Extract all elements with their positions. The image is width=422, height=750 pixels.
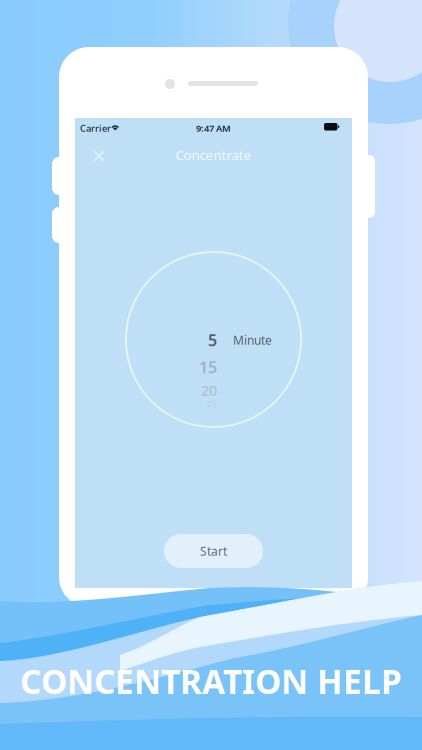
staticText: 15	[199, 356, 217, 378]
staticText: CONCENTRATION HELP	[20, 659, 402, 703]
staticText: 25	[207, 399, 217, 409]
staticText: 5	[208, 329, 217, 351]
staticText: 9:47 AM	[196, 122, 231, 134]
button[interactable]: Start	[164, 534, 263, 568]
staticText: Concentrate	[175, 146, 251, 164]
staticText: Minute	[233, 332, 272, 348]
staticText: Start	[200, 543, 227, 559]
staticText: Carrier	[80, 122, 111, 134]
button[interactable]: Close	[85, 142, 113, 170]
staticText: 20	[201, 380, 217, 400]
